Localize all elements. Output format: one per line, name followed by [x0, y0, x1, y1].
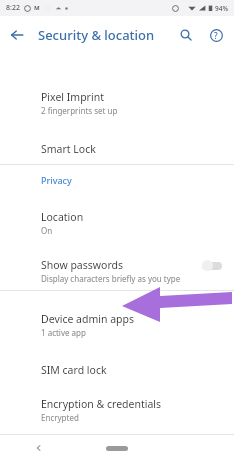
button[interactable]: Location: [0, 188, 234, 236]
button[interactable]: Device admin apps: [0, 300, 234, 338]
staticText: 8:22: [6, 3, 20, 13]
staticText: 94%: [215, 4, 228, 13]
button[interactable]: Home: [78, 435, 156, 461]
staticText: SIM card lock: [41, 363, 107, 377]
staticText: Encrypted: [41, 412, 79, 423]
staticText: Pixel Imprint: [41, 90, 104, 104]
button[interactable]: Help: [201, 20, 231, 50]
staticText: Security & location: [38, 26, 155, 44]
button[interactable]: Encryption & credentials: [0, 377, 234, 423]
button[interactable]: Search: [171, 20, 201, 50]
staticText: ?: [214, 30, 218, 41]
button[interactable]: SIM card lock: [0, 338, 234, 377]
staticText: Location: [41, 210, 84, 224]
staticText: 2 fingerprints set up: [41, 105, 118, 116]
staticText: Privacy: [41, 174, 72, 186]
staticText: Smart Lock: [41, 142, 96, 156]
button[interactable]: Pixel Imprint: [0, 60, 234, 116]
staticText: 1 active app: [41, 327, 86, 338]
staticText: Display characters briefly as you type: [41, 273, 181, 284]
staticText: Show passwords: [41, 258, 124, 272]
staticText: On: [41, 225, 53, 236]
button[interactable]: Back: [0, 18, 34, 52]
staticText: M: [34, 4, 40, 12]
button[interactable]: Back: [0, 435, 78, 461]
staticText: Encryption & credentials: [41, 397, 162, 411]
button[interactable]: Smart Lock: [0, 116, 234, 156]
staticText: Device admin apps: [41, 312, 135, 326]
button[interactable]: Show passwords: [0, 236, 234, 284]
